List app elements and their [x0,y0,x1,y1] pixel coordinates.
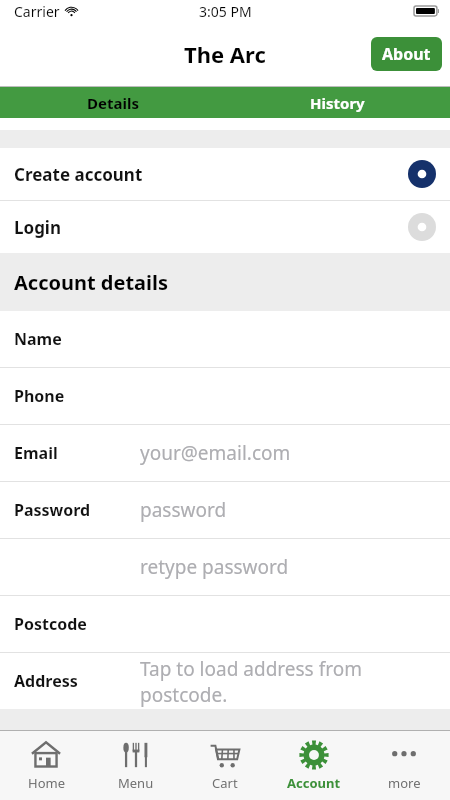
staticText: About [382,43,431,65]
button[interactable]: Address [0,653,450,709]
staticText: 3:05 PM [199,2,252,21]
button[interactable]: About [371,37,442,71]
button[interactable]: Details [0,87,225,118]
staticText: Cart [212,774,238,792]
staticText: Postcode [14,613,87,635]
button[interactable]: retype password [0,539,450,595]
button[interactable]: Email [0,425,450,481]
button[interactable]: more [361,731,447,800]
button[interactable]: Home [3,731,89,800]
button[interactable]: Name [0,311,450,367]
staticText: Account details [14,269,169,296]
staticText: Tap to load address from postcode. [140,656,362,707]
staticText: Details [87,93,139,113]
staticText: Login [14,216,62,239]
staticText: The Arc [184,39,266,69]
button[interactable]: History [225,87,450,118]
staticText: Password [14,499,91,521]
button[interactable]: Login [0,201,450,253]
staticText: Phone [14,385,65,407]
button[interactable]: Postcode [0,596,450,652]
staticText: your@email.com [140,440,291,466]
button[interactable]: Phone [0,368,450,424]
button[interactable]: Password [0,482,450,538]
button[interactable]: Menu [93,731,179,800]
staticText: History [310,93,365,113]
button[interactable]: Cart [182,731,268,800]
staticText: Address [14,670,78,692]
staticText: Menu [118,774,154,792]
staticText: Account [287,774,341,792]
staticText: Carrier [14,2,60,21]
staticText: Create account [14,163,143,186]
staticText: retype password [140,554,289,580]
staticText: Email [14,442,58,464]
button[interactable]: Account [271,731,357,800]
staticText: password [140,497,227,523]
staticText: Home [28,774,65,792]
staticText: Name [14,328,62,350]
button[interactable]: Create account [0,148,450,200]
staticText: more [388,774,421,792]
